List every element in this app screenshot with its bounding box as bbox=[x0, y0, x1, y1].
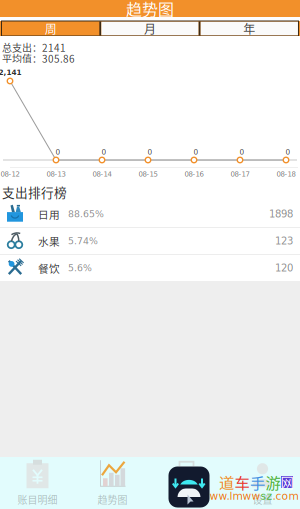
staticText: 餐饮 bbox=[38, 260, 60, 276]
button[interactable]: 餐饮 bbox=[0, 255, 300, 281]
staticText: 年 bbox=[243, 20, 255, 37]
button[interactable]: 水果 bbox=[0, 228, 300, 254]
staticText: 水果 bbox=[38, 233, 60, 249]
button[interactable]: 趋势图 bbox=[75, 457, 150, 509]
staticText: ww.lmww bbox=[209, 490, 260, 502]
staticText: 月 bbox=[144, 20, 156, 37]
button[interactable]: 月 bbox=[101, 21, 199, 35]
button[interactable]: 日用 bbox=[0, 201, 300, 227]
staticText: 88.65% bbox=[68, 209, 104, 219]
button[interactable]: 设置 bbox=[225, 457, 300, 509]
staticText: 支出排行榜 bbox=[2, 183, 67, 201]
staticText: 账目明细 bbox=[17, 492, 57, 507]
staticText: 08-15 bbox=[138, 170, 157, 178]
staticText: 游 bbox=[265, 471, 280, 493]
staticText: 08-13 bbox=[46, 170, 65, 178]
staticText: 日用 bbox=[38, 206, 60, 222]
staticText: 1898 bbox=[269, 208, 293, 220]
staticText: 设置 bbox=[252, 492, 272, 507]
button[interactable]: 年 bbox=[201, 21, 298, 35]
staticText: 5.74% bbox=[68, 236, 98, 246]
staticText: 网 bbox=[280, 472, 293, 492]
staticText: 预算 bbox=[177, 492, 197, 507]
staticText: 0 bbox=[55, 148, 60, 156]
staticText: 08-16 bbox=[184, 170, 203, 178]
button[interactable]: 周 bbox=[2, 21, 99, 35]
staticText: 120 bbox=[275, 262, 293, 274]
staticText: 0 bbox=[101, 148, 106, 156]
staticText: 0 bbox=[285, 148, 290, 156]
staticText: 08-14 bbox=[92, 170, 111, 178]
staticText: 123 bbox=[275, 235, 293, 247]
staticText: 0 bbox=[239, 148, 244, 156]
button[interactable]: 账目明细 bbox=[0, 457, 75, 509]
staticText: 0 bbox=[147, 148, 152, 156]
staticText: 周 bbox=[45, 20, 57, 37]
staticText: 趋势图 bbox=[97, 492, 127, 507]
staticText: 0 bbox=[193, 148, 198, 156]
staticText: 平均值：305.86 bbox=[2, 51, 75, 66]
staticText: 08-17 bbox=[230, 170, 249, 178]
staticText: 5.6% bbox=[68, 263, 92, 273]
button[interactable]: 预算 bbox=[150, 457, 225, 509]
staticText: 2,141 bbox=[0, 68, 21, 77]
staticText: 总支出：2141 bbox=[2, 40, 66, 55]
staticText: .com bbox=[272, 490, 298, 502]
staticText: sz bbox=[260, 490, 272, 502]
staticText: 08-18 bbox=[276, 170, 295, 178]
staticText: 道 bbox=[219, 471, 234, 493]
staticText: 08-12 bbox=[0, 170, 19, 178]
staticText: 趋势图 bbox=[126, 0, 174, 20]
staticText: 车 bbox=[234, 471, 249, 493]
staticText: 手 bbox=[250, 471, 265, 493]
